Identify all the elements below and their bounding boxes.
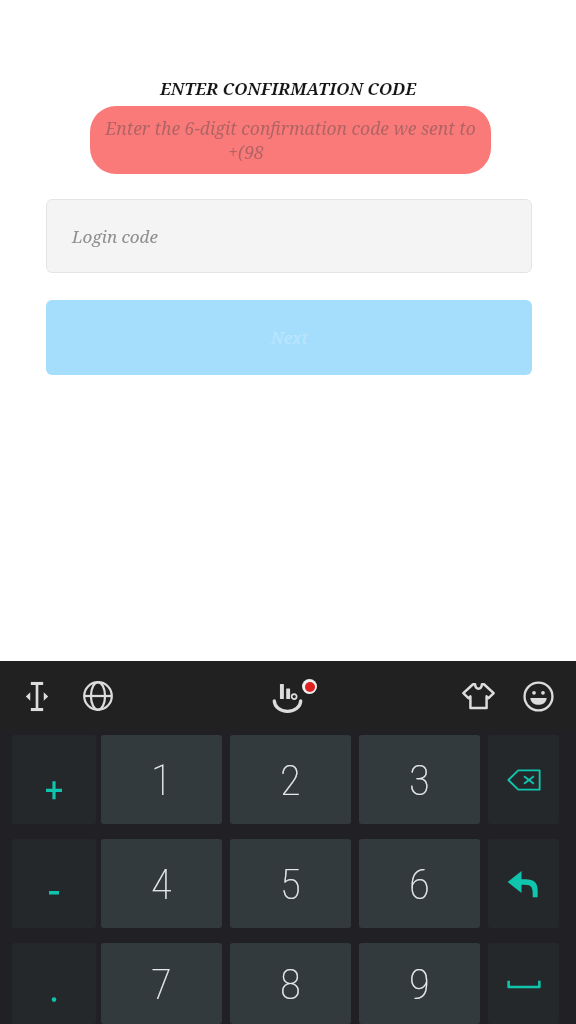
staticText: 8 [280,959,301,1009]
staticText: 9 [409,959,430,1009]
button[interactable]: 4 [101,839,222,928]
staticText: Login code [72,225,158,248]
button[interactable]: Move cursor [14,673,60,719]
button[interactable]: 6 [359,839,480,928]
staticText: ENTER CONFIRMATION CODE [0,77,576,100]
staticText: 3 [409,755,430,805]
staticText: 5 [280,859,301,909]
button[interactable]: 8 [230,943,351,1024]
button[interactable]: Gesture typing [264,673,310,719]
button[interactable]: Space [488,943,559,1024]
button[interactable]: Login code [46,199,532,273]
button[interactable]: 3 [359,735,480,824]
staticText: 7 [151,959,172,1009]
button[interactable]: Plus [12,735,96,824]
button[interactable]: Period [12,943,96,1024]
button[interactable]: Change language [75,673,121,719]
button[interactable]: 5 [230,839,351,928]
staticText: 6 [409,859,430,909]
button[interactable]: 2 [230,735,351,824]
staticText: Next [271,326,308,349]
button[interactable]: Emoji [515,673,561,719]
staticText: 4 [151,859,172,909]
staticText: 2 [280,755,301,805]
staticText: 1 [151,755,172,805]
button[interactable]: 9 [359,943,480,1024]
staticText: +(98 [228,140,264,164]
button[interactable]: Minus [12,839,96,928]
button[interactable]: 1 [101,735,222,824]
button[interactable]: 7 [101,943,222,1024]
button[interactable]: Themes [455,673,501,719]
button[interactable]: Backspace [488,735,559,824]
staticText: Enter the 6-digit confirmation code we s… [105,116,476,140]
button[interactable]: Enter [488,839,559,928]
